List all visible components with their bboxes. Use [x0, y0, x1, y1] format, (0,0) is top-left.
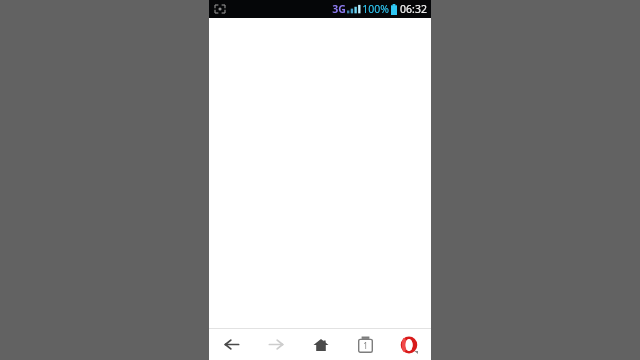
- button[interactable]: Back: [209, 329, 254, 360]
- button[interactable]: Forward: [254, 329, 299, 360]
- button[interactable]: Home: [299, 329, 343, 360]
- staticText: 3G: [332, 2, 346, 16]
- button[interactable]: Tabs: [343, 329, 387, 360]
- staticText: 100%: [362, 2, 389, 16]
- button[interactable]: Opera menu: [387, 329, 431, 360]
- staticText: 06:32: [400, 2, 427, 16]
- staticText: 1: [363, 340, 368, 351]
